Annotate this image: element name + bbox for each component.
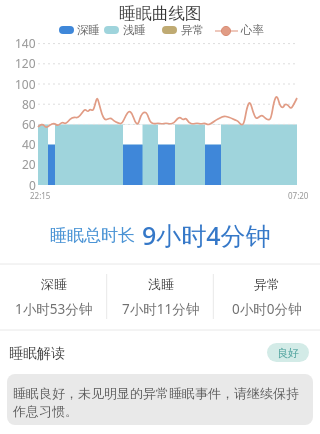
staticText: 100 — [15, 76, 36, 92]
staticText: 良好 — [277, 346, 299, 360]
button[interactable]: 良好 — [267, 343, 309, 362]
staticText: 9小时4分钟 — [142, 218, 271, 252]
button[interactable]: 深睡 — [0, 276, 107, 318]
staticText: 20 — [22, 156, 36, 172]
staticText: 140 — [15, 35, 36, 51]
button[interactable]: 浅睡 — [107, 276, 214, 318]
staticText: 0 — [29, 177, 36, 193]
staticText: 深睡 — [41, 276, 67, 292]
staticText: 睡眠良好，未见明显的异常睡眠事件，请继续保持作息习惯。 — [13, 385, 309, 420]
staticText: 07:20 — [288, 190, 309, 201]
staticText: 60 — [22, 116, 36, 132]
staticText: 7小时11分钟 — [122, 300, 200, 318]
staticText: 1小时53分钟 — [15, 300, 93, 318]
staticText: 40 — [22, 136, 36, 152]
staticText: 睡眠解读 — [9, 345, 65, 363]
staticText: 80 — [22, 96, 36, 112]
button[interactable]: 异常 — [213, 276, 320, 318]
staticText: 22:15 — [30, 190, 51, 201]
staticText: 浅睡 — [123, 23, 146, 37]
staticText: 120 — [15, 55, 36, 71]
staticText: 异常 — [254, 276, 280, 292]
staticText: 0小时0分钟 — [232, 300, 302, 318]
staticText: 异常 — [181, 23, 204, 37]
staticText: 睡眠总时长 — [50, 225, 135, 246]
staticText: 浅睡 — [148, 276, 174, 292]
staticText: 深睡 — [77, 23, 100, 37]
staticText: 睡眠曲线图 — [119, 3, 202, 24]
staticText: 心率 — [241, 23, 264, 37]
